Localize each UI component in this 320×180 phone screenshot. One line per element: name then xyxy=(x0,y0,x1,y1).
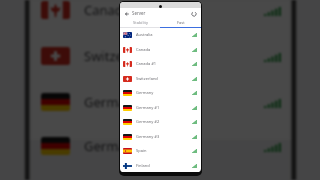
staticText: Finland xyxy=(136,163,150,168)
button[interactable]: Germany xyxy=(120,85,201,100)
staticText: Stability xyxy=(133,20,148,25)
button[interactable]: Germany #2 xyxy=(120,114,201,129)
button[interactable]: Germany #1 xyxy=(120,100,201,115)
button[interactable]: Germany #3 xyxy=(120,129,201,144)
button[interactable]: Spain xyxy=(120,143,201,158)
staticText: Germany xyxy=(136,90,154,95)
button[interactable]: Australia xyxy=(120,27,201,42)
staticText: Spain xyxy=(136,148,147,153)
staticText: Canada xyxy=(84,1,131,19)
staticText: Canada #1 xyxy=(136,61,157,66)
button[interactable]: Fast xyxy=(160,18,201,27)
staticText: Canada xyxy=(136,47,151,52)
staticText: Server xyxy=(132,10,146,16)
button[interactable]: Stability xyxy=(120,18,160,27)
staticText: Switzerland xyxy=(84,47,155,65)
staticText: Germany xyxy=(84,93,141,111)
staticText: Fast xyxy=(177,20,185,25)
button[interactable]: Refresh xyxy=(189,9,198,18)
staticText: Germany #3 xyxy=(136,134,160,139)
staticText: Australia xyxy=(136,32,153,37)
staticText: Germany #1 xyxy=(84,137,160,155)
staticText: Switzerland xyxy=(136,76,158,81)
button[interactable]: Finland xyxy=(120,158,201,172)
button[interactable]: Canada #1 xyxy=(120,56,201,71)
button[interactable]: Switzerland xyxy=(120,71,201,86)
button[interactable]: Canada xyxy=(120,42,201,57)
staticText: Germany #2 xyxy=(136,119,160,124)
staticText: Germany #1 xyxy=(136,105,160,110)
button[interactable]: Back xyxy=(123,10,130,17)
